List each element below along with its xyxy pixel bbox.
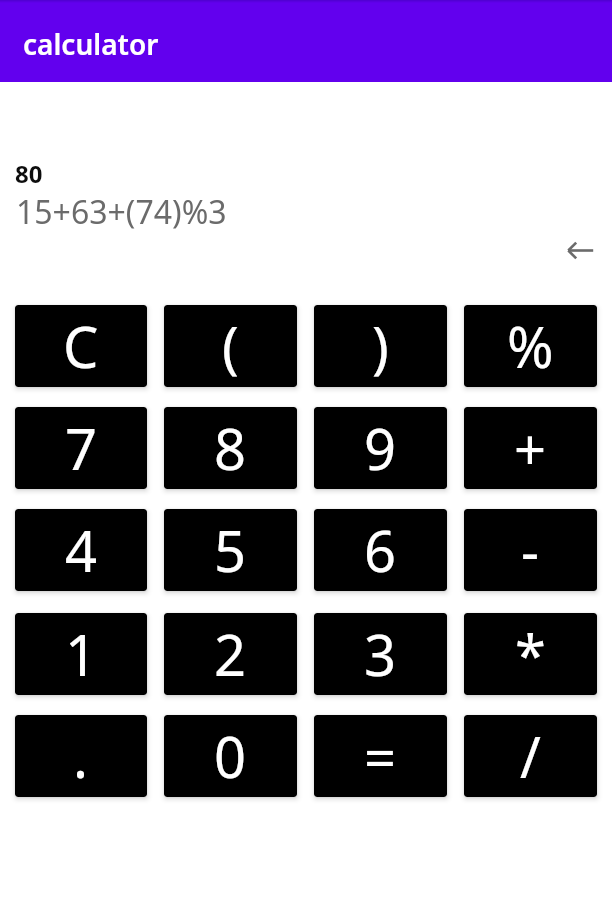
button[interactable]: . xyxy=(15,715,147,797)
button[interactable]: % xyxy=(464,305,597,387)
button[interactable]: ( xyxy=(164,305,297,387)
staticText: 3 xyxy=(364,616,397,692)
staticText: C xyxy=(63,308,99,384)
staticText: % xyxy=(507,308,554,384)
staticText: 7 xyxy=(65,410,98,486)
button[interactable]: + xyxy=(464,407,597,489)
staticText: ) xyxy=(372,308,389,384)
button[interactable]: 9 xyxy=(314,407,447,489)
staticText: 0 xyxy=(214,718,247,794)
staticText: 8 xyxy=(214,410,247,486)
button[interactable]: * xyxy=(464,613,597,695)
staticText: = xyxy=(364,718,397,794)
staticText: 15+63+(74)%3 xyxy=(16,190,227,234)
staticText: 9 xyxy=(364,410,397,486)
button[interactable]: 1 xyxy=(15,613,147,695)
button[interactable]: 0 xyxy=(164,715,297,797)
staticText: calculator xyxy=(23,25,159,63)
staticText: + xyxy=(514,410,547,486)
button[interactable]: 8 xyxy=(164,407,297,489)
button[interactable]: ) xyxy=(314,305,447,387)
button[interactable]: - xyxy=(464,509,597,591)
button[interactable]: C xyxy=(15,305,147,387)
button[interactable]: = xyxy=(314,715,447,797)
staticText: * xyxy=(515,616,546,692)
staticText: 5 xyxy=(214,512,247,588)
staticText: 2 xyxy=(214,616,247,692)
staticText: 1 xyxy=(65,616,98,692)
staticText: - xyxy=(521,512,540,588)
staticText: 6 xyxy=(364,512,397,588)
staticText: ( xyxy=(222,308,239,384)
button[interactable]: 5 xyxy=(164,509,297,591)
staticText: 80 xyxy=(15,157,43,190)
button[interactable]: 4 xyxy=(15,509,147,591)
button[interactable]: 6 xyxy=(314,509,447,591)
button[interactable]: / xyxy=(464,715,597,797)
button[interactable]: 7 xyxy=(15,407,147,489)
button[interactable]: Backspace xyxy=(558,228,602,272)
button[interactable]: 2 xyxy=(164,613,297,695)
staticText: 4 xyxy=(65,512,98,588)
staticText: / xyxy=(520,718,541,794)
button[interactable]: 3 xyxy=(314,613,447,695)
staticText: . xyxy=(73,718,89,794)
